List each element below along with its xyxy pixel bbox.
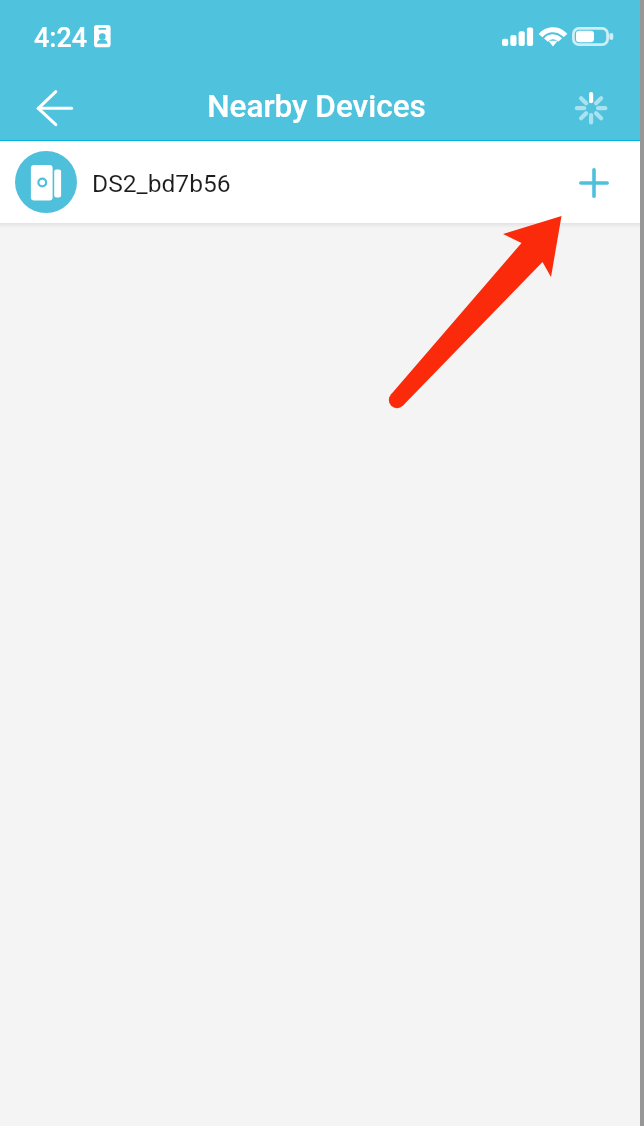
button[interactable]: Add device: [566, 155, 622, 211]
button[interactable]: Back: [20, 75, 82, 137]
staticText: DS2_bd7b56: [92, 169, 231, 198]
staticText: 4:24: [34, 22, 88, 54]
button[interactable]: Refresh: [562, 79, 618, 135]
button[interactable]: DS2_bd7b56: [0, 141, 644, 223]
staticText: Nearby Devices: [207, 88, 426, 125]
